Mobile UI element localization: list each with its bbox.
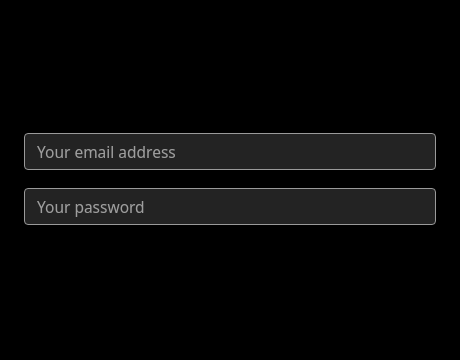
staticText: Your password: [37, 196, 145, 217]
button[interactable]: Your password: [24, 188, 436, 225]
staticText: Your email address: [37, 141, 176, 162]
button[interactable]: Your email address: [24, 133, 436, 170]
